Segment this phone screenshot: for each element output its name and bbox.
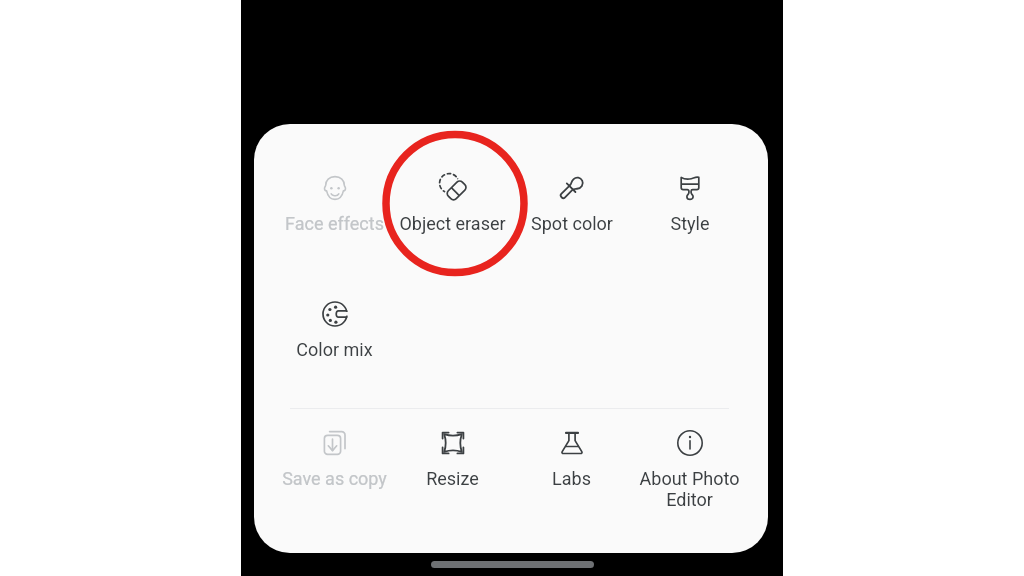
button[interactable]: About Photo Editor [630,425,749,510]
staticText: Style [670,213,710,234]
staticText: Color mix [296,339,373,360]
staticText: Labs [552,468,591,489]
button[interactable]: Color mix [275,296,394,360]
staticText: Object eraser [399,213,506,234]
button[interactable]: Style [630,170,749,234]
staticText: Spot color [531,213,613,234]
button[interactable]: Spot color [512,170,631,234]
button[interactable]: Face effects [275,170,394,234]
button[interactable]: Resize [393,425,512,489]
staticText: About Photo Editor [630,468,749,510]
button[interactable]: Save as copy [275,425,394,489]
staticText: Face effects [285,213,384,234]
button[interactable]: Object eraser [393,170,512,234]
staticText: Save as copy [282,468,387,489]
button[interactable]: Labs [512,425,631,489]
button[interactable]: Home gesture handle [431,561,594,568]
staticText: Resize [426,468,479,489]
